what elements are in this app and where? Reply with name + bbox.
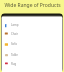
staticText: Lamp: [11, 23, 19, 27]
button[interactable]: Sofa: [2, 41, 28, 47]
staticText: Sofa: [11, 42, 17, 46]
button[interactable]: Table: [2, 52, 28, 58]
staticText: Wide Range of Products: [4, 2, 61, 9]
button[interactable]: Chair: [2, 31, 28, 37]
staticText: Rug: [11, 62, 17, 66]
button[interactable]: Rug: [2, 61, 28, 67]
staticText: Table: [11, 53, 18, 57]
button[interactable]: Lamp: [2, 22, 28, 28]
staticText: Chair: [11, 32, 18, 36]
